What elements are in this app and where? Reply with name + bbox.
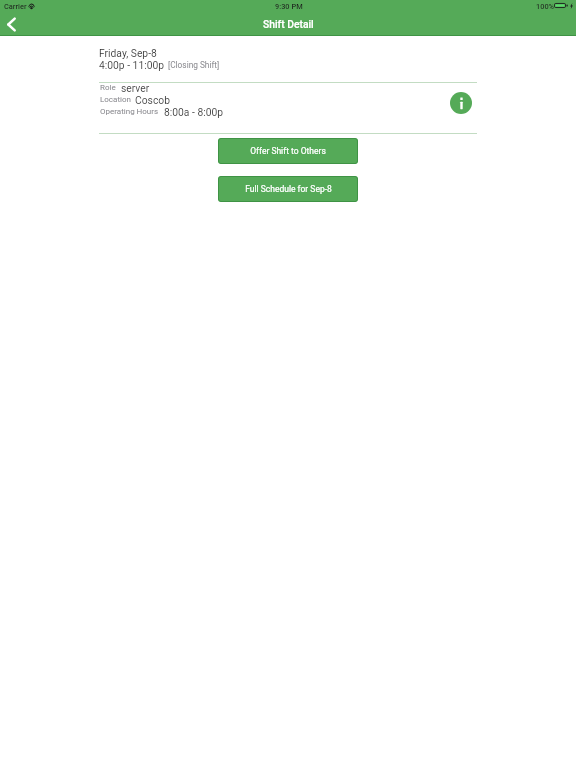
staticText: 9:30 PM xyxy=(275,2,303,11)
staticText: Carrier xyxy=(4,2,27,11)
staticText: Friday, Sep-8 xyxy=(99,47,157,59)
staticText: Shift Detail xyxy=(263,18,314,30)
button[interactable]: Offer Shift to Others xyxy=(218,138,358,164)
staticText: server xyxy=(121,82,150,94)
staticText: Role xyxy=(100,83,116,92)
staticText: 100% xyxy=(536,2,555,11)
staticText: Operating Hours xyxy=(100,107,159,116)
staticText: Offer Shift to Others xyxy=(250,146,326,156)
button[interactable]: Full Schedule for Sep-8 xyxy=(218,176,358,202)
staticText: 4:00p - 11:00p xyxy=(99,59,165,71)
staticText: [Closing Shift] xyxy=(168,60,220,70)
staticText: Location xyxy=(100,95,131,104)
staticText: Coscob xyxy=(135,94,170,106)
staticText: Full Schedule for Sep-8 xyxy=(245,184,332,194)
button[interactable]: Back xyxy=(0,14,24,35)
button[interactable]: Information xyxy=(450,92,472,114)
staticText: 8:00a - 8:00p xyxy=(164,106,224,118)
